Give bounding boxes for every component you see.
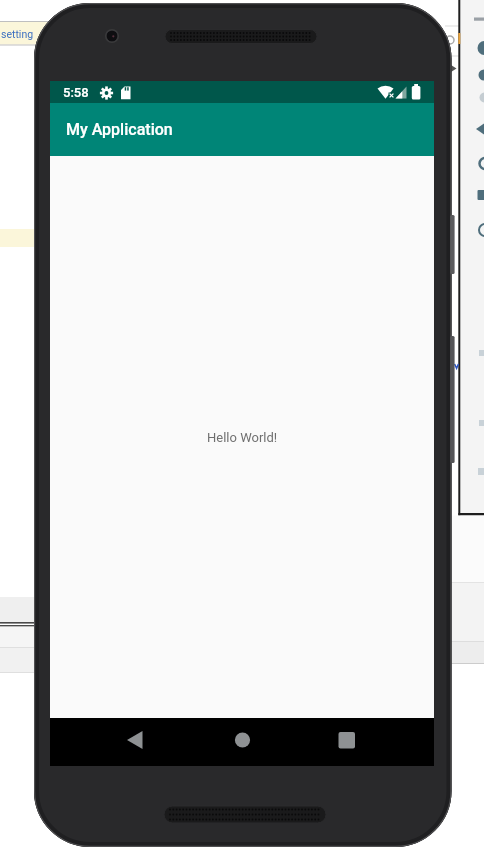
button[interactable]	[466, 186, 484, 204]
button[interactable]: setting	[0, 22, 37, 45]
button[interactable]	[466, 88, 484, 106]
button[interactable]	[466, 120, 484, 138]
button[interactable]	[466, 221, 484, 239]
button[interactable]	[466, 66, 484, 84]
button[interactable]	[324, 716, 372, 764]
button[interactable]	[218, 716, 266, 764]
button[interactable]	[466, 154, 484, 172]
button[interactable]	[466, 39, 484, 57]
staticText: Hello World!	[207, 430, 278, 445]
staticText: My Application	[66, 120, 173, 139]
staticText: 5:58	[63, 85, 89, 100]
staticText: setting	[1, 28, 34, 40]
button[interactable]	[111, 716, 159, 764]
button[interactable]	[466, 10, 484, 28]
